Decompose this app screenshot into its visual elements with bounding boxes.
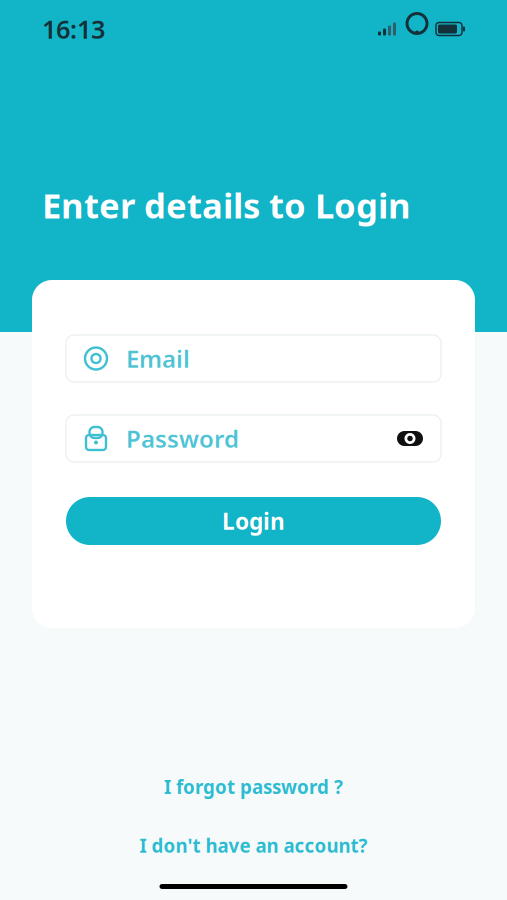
staticText: I forgot password ? [164, 774, 343, 799]
staticText: Email [126, 343, 190, 374]
button[interactable]: Login [66, 497, 441, 545]
staticText: I don't have an account? [139, 833, 367, 858]
staticText: Enter details to Login [42, 182, 411, 228]
staticText: Password [126, 423, 239, 454]
button[interactable]: I forgot password ? [144, 766, 363, 807]
button[interactable]: Show password [397, 428, 423, 448]
staticText: Login [222, 506, 285, 536]
button[interactable]: I don't have an account? [119, 825, 387, 866]
staticText: 16:13 [42, 12, 105, 46]
